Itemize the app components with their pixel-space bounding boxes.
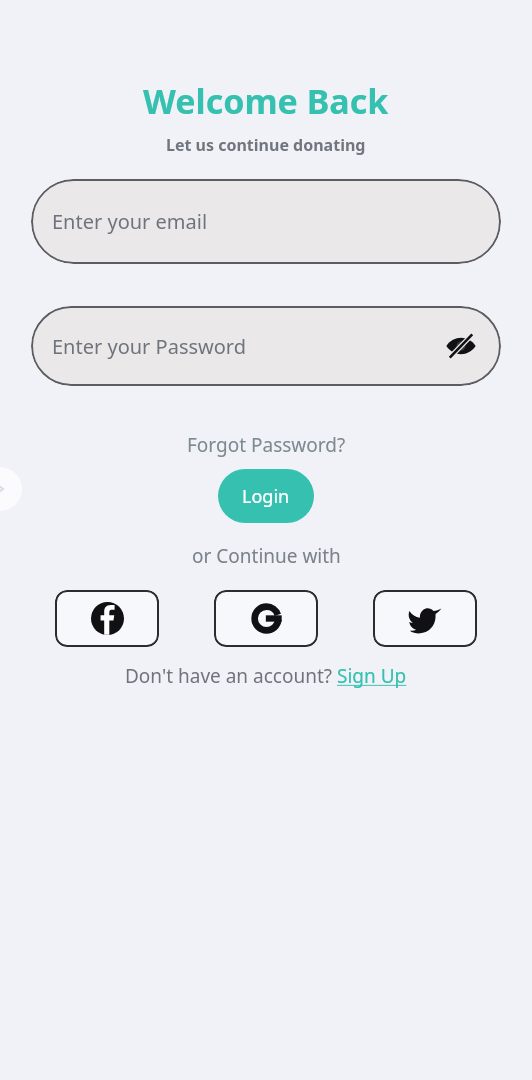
staticText: or Continue with (192, 543, 341, 569)
button[interactable]: Sign in with Google (214, 590, 318, 647)
staticText: Sign Up (337, 663, 407, 689)
staticText: Don't have an account? (125, 663, 337, 689)
button[interactable]: Forgot Password? (183, 428, 350, 462)
button[interactable]: Enter your Password (31, 306, 501, 386)
button[interactable]: Show password (439, 324, 483, 368)
button[interactable]: Sign in with Twitter (373, 590, 477, 647)
button[interactable]: Open drawer (0, 467, 22, 511)
staticText: Enter your Password (52, 333, 247, 360)
staticText: Forgot Password? (187, 432, 346, 458)
button[interactable]: Login (218, 469, 314, 523)
staticText: Enter your email (52, 208, 208, 235)
staticText: Let us continue donating (166, 134, 366, 156)
button[interactable]: Enter your email (31, 179, 501, 264)
staticText: Login (242, 484, 290, 509)
button[interactable]: Sign in with Facebook (55, 590, 159, 647)
button[interactable]: Sign Up (337, 663, 407, 689)
staticText: Welcome Back (143, 78, 389, 124)
